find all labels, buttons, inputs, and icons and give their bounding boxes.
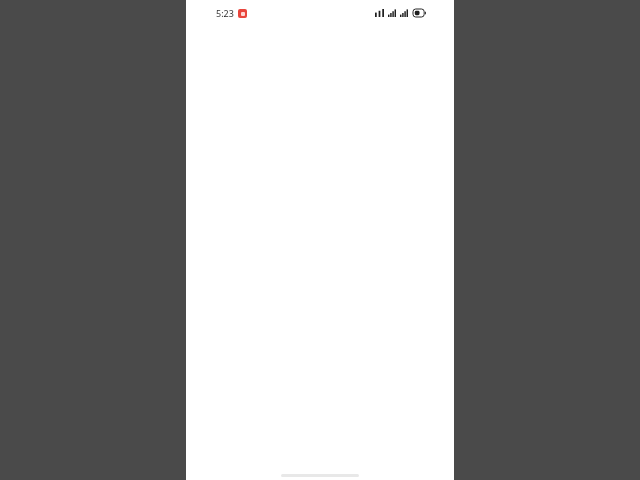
staticText: 5:23: [216, 7, 234, 19]
